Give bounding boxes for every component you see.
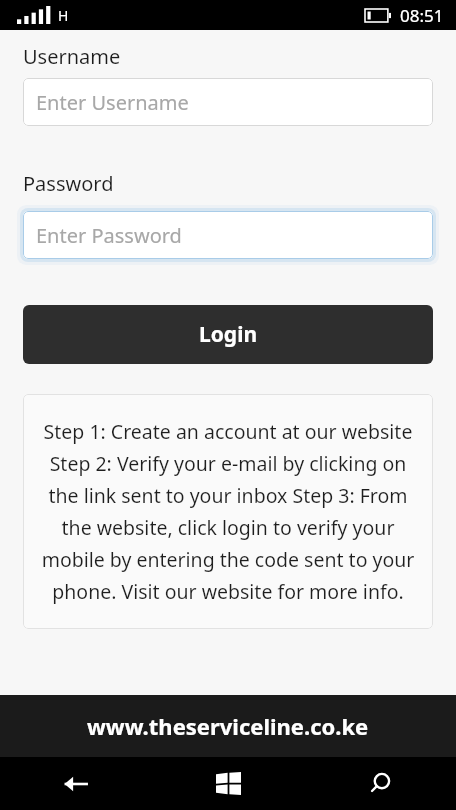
button[interactable]: www.theserviceline.co.ke [0,695,456,757]
button[interactable]: Enter Password [23,211,433,259]
button[interactable]: Search [304,757,456,810]
button[interactable]: Start [152,757,304,810]
staticText: Enter Password [36,222,182,249]
staticText: www.theserviceline.co.ke [87,711,369,741]
staticText: Login [199,320,258,349]
staticText: 08:51 [400,4,444,27]
button[interactable]: Login [23,305,433,364]
staticText: Password [23,170,114,197]
button[interactable]: Enter Username [23,78,433,126]
staticText: Step 1: Create an account at our website… [35,418,421,605]
button[interactable]: Back [0,757,152,810]
staticText: Enter Username [36,89,189,116]
staticText: Username [23,43,121,70]
staticText: H [58,6,69,25]
